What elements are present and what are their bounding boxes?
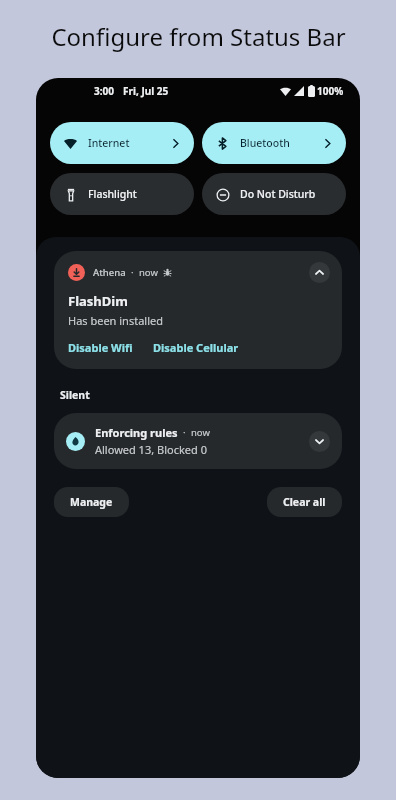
- staticText: Flashlight: [88, 187, 182, 201]
- button[interactable]: Clear all: [267, 487, 342, 517]
- button[interactable]: Do Not Disturb: [202, 173, 346, 215]
- staticText: 100%: [317, 84, 344, 98]
- staticText: Disable Wifi: [68, 340, 133, 355]
- staticText: Has been installed: [68, 313, 163, 328]
- staticText: Manage: [70, 495, 113, 509]
- button[interactable]: Manage: [54, 487, 129, 517]
- staticText: Clear all: [283, 495, 326, 509]
- staticText: Do Not Disturb: [240, 187, 334, 201]
- staticText: Fri, Jul 25: [123, 84, 169, 98]
- staticText: FlashDim: [68, 292, 128, 310]
- button[interactable]: Disable Wifi: [68, 340, 135, 355]
- staticText: Configure from Status Bar: [51, 20, 346, 53]
- staticText: Athena: [93, 266, 126, 279]
- staticText: ·: [126, 266, 139, 279]
- button[interactable]: Bluetooth: [202, 122, 346, 164]
- button[interactable]: Internet: [50, 122, 194, 164]
- button[interactable]: Flashlight: [50, 173, 194, 215]
- button[interactable]: Disable Cellular: [153, 340, 239, 355]
- staticText: Allowed 13, Blocked 0: [95, 442, 207, 457]
- staticText: Disable Cellular: [153, 340, 239, 355]
- button[interactable]: Athena: [54, 251, 342, 369]
- staticText: 3:00: [94, 84, 114, 98]
- staticText: Internet: [88, 136, 169, 150]
- staticText: now: [191, 426, 210, 439]
- staticText: ·: [178, 426, 191, 439]
- staticText: now: [139, 266, 158, 279]
- staticText: Bluetooth: [240, 136, 321, 150]
- staticText: Enforcing rules: [95, 425, 178, 440]
- button[interactable]: Expand notification: [309, 431, 330, 452]
- button[interactable]: Collapse notification: [309, 262, 330, 283]
- staticText: Silent: [60, 388, 90, 402]
- button[interactable]: Enforcing rules: [54, 413, 342, 469]
